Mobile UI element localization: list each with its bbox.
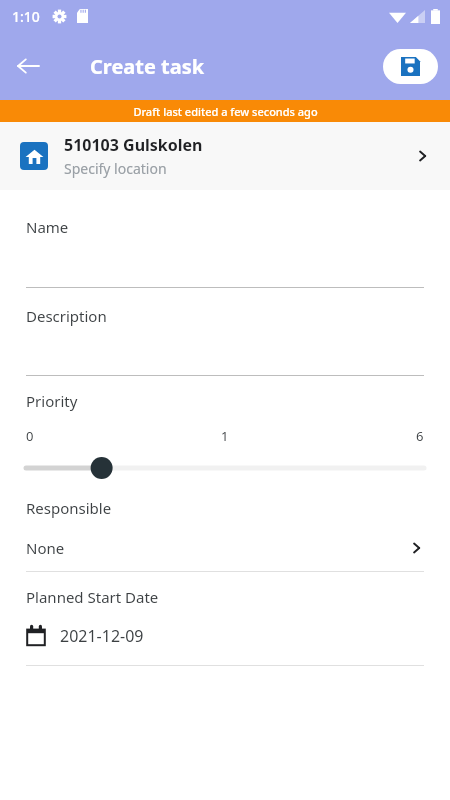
button[interactable] — [26, 457, 424, 479]
staticText: 2021-12-09 — [60, 625, 144, 647]
staticText: Name — [26, 217, 69, 237]
button[interactable]: 2021-12-09 — [26, 625, 424, 647]
staticText: 510103 Gulskolen — [64, 134, 203, 156]
staticText: Responsible — [26, 498, 112, 518]
staticText: Draft last edited a few seconds ago — [133, 104, 318, 119]
staticText: Description — [26, 306, 107, 326]
staticText: 1 — [221, 427, 229, 445]
staticText: 1:10 — [12, 7, 40, 26]
button[interactable]: Name — [26, 217, 424, 237]
button[interactable]: 510103 Gulskolen — [0, 122, 450, 190]
button[interactable]: Description — [26, 306, 424, 326]
staticText: Create task — [90, 53, 205, 80]
staticText: Planned Start Date — [26, 587, 159, 607]
button[interactable]: Save — [383, 49, 438, 84]
staticText: Specify location — [64, 159, 167, 178]
staticText: 0 — [26, 427, 34, 445]
button[interactable]: None — [26, 538, 424, 558]
staticText: Priority — [26, 391, 78, 411]
staticText: None — [26, 538, 65, 558]
staticText: 6 — [416, 427, 424, 445]
button[interactable]: Back — [8, 46, 48, 86]
